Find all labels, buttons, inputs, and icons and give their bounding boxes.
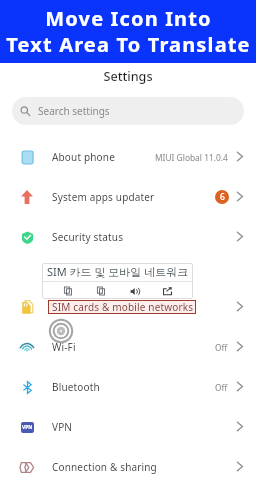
button[interactable]: Share: [160, 284, 174, 298]
staticText: About phone: [52, 150, 115, 164]
button[interactable]: VPN: [0, 407, 256, 447]
staticText: Move Icon Into Text Area To Translate: [6, 5, 251, 57]
staticText: Off: [215, 382, 228, 393]
button[interactable]: SIM cards & mobile networks: [0, 287, 256, 327]
staticText: VPN: [22, 424, 33, 431]
button[interactable]: Wi-Fi: [0, 327, 256, 367]
staticText: Security status: [52, 230, 124, 244]
staticText: MIUI Global 11.0.4: [155, 152, 228, 163]
button[interactable]: Speak: [127, 284, 141, 298]
staticText: Bluetooth: [52, 380, 100, 394]
button[interactable]: Bluetooth: [0, 367, 256, 407]
staticText: Wi-Fi: [52, 340, 76, 354]
staticText: Settings: [103, 68, 153, 85]
button[interactable]: Connection & sharing: [0, 447, 256, 487]
staticText: System apps updater: [52, 190, 155, 204]
staticText: Connection & sharing: [52, 460, 157, 474]
staticText: 6: [220, 191, 225, 203]
staticText: SIM 카드 및 모바일 네트워크: [47, 264, 189, 279]
button[interactable]: System apps updater: [0, 177, 256, 217]
staticText: Off: [215, 342, 228, 353]
staticText: Search settings: [38, 104, 110, 118]
button[interactable]: Search settings: [12, 97, 244, 125]
button[interactable]: About phone: [0, 137, 256, 177]
button[interactable]: Copy all: [94, 284, 108, 298]
button[interactable]: Security status: [0, 217, 256, 257]
staticText: VPN: [52, 420, 73, 434]
staticText: SIM cards & mobile networks: [52, 300, 194, 314]
button[interactable]: Copy: [61, 284, 75, 298]
other: Translate cursor: [48, 318, 74, 344]
